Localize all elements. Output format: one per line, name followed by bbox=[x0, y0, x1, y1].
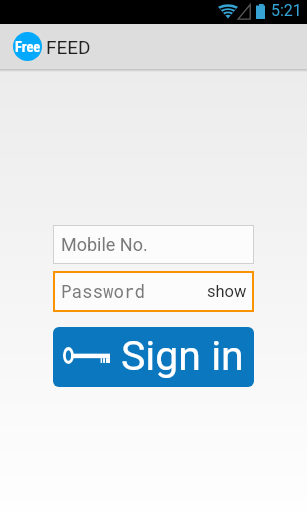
staticText: Sign in bbox=[121, 332, 244, 380]
staticText: Mobile No. bbox=[61, 234, 148, 255]
button[interactable]: Mobile No. bbox=[53, 225, 254, 264]
button[interactable]: Sign in key bbox=[53, 327, 254, 387]
button[interactable]: show bbox=[207, 282, 247, 301]
staticText: Free bbox=[15, 39, 41, 56]
staticText: 5:21 bbox=[271, 1, 302, 20]
staticText: Password bbox=[61, 280, 146, 303]
staticText: FEED bbox=[46, 36, 91, 58]
button[interactable]: Password bbox=[53, 271, 254, 312]
other: Sign in key bbox=[63, 347, 110, 364]
